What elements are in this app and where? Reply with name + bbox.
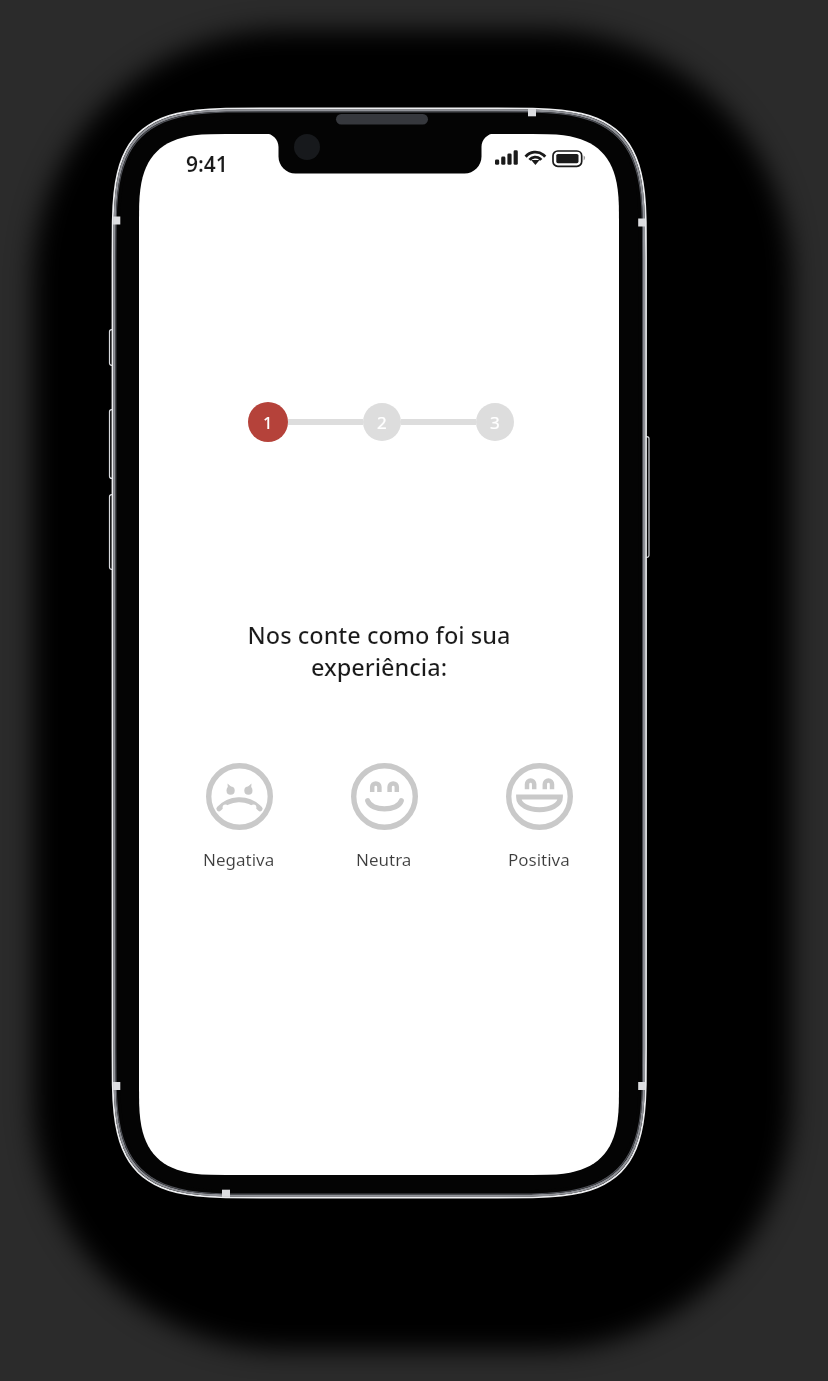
button[interactable]: 1 — [248, 402, 288, 442]
staticText: Negativa — [203, 848, 275, 871]
staticText: 9:41 — [186, 150, 228, 179]
staticText: 1 — [263, 411, 273, 434]
staticText: Nos conte como foi sua experiência: — [139, 619, 619, 683]
staticText: 3 — [490, 411, 500, 434]
button[interactable]: Positiva — [484, 763, 594, 871]
button[interactable]: Neutra — [329, 763, 439, 871]
staticText: Positiva — [508, 848, 570, 871]
button[interactable]: 2 — [363, 403, 401, 441]
staticText: Neutra — [356, 848, 412, 871]
button[interactable]: 3 — [476, 403, 514, 441]
staticText: 2 — [377, 411, 387, 434]
button[interactable]: Negativa — [184, 763, 294, 871]
